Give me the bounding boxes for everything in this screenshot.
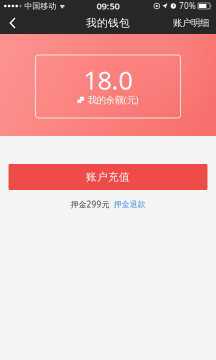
staticText: 我的钱包 [86,16,130,29]
staticText: 押金299元 [70,199,109,210]
staticText: 09:50 [96,0,119,12]
staticText: 18.0 [83,63,132,97]
button[interactable]: 账户明细 [166,12,216,34]
button[interactable]: 账户充值 [8,164,207,190]
staticText: 账户充值 [86,170,130,183]
staticText: 中国移动 [24,1,56,11]
staticText: 70% [179,1,196,11]
staticText: 押金退款 [113,199,145,209]
staticText: 账户明细 [173,17,209,29]
button[interactable]: 押金退款 [113,199,145,209]
button[interactable]: 返回 [0,12,26,34]
staticText: 我的余额(元) [88,94,139,106]
